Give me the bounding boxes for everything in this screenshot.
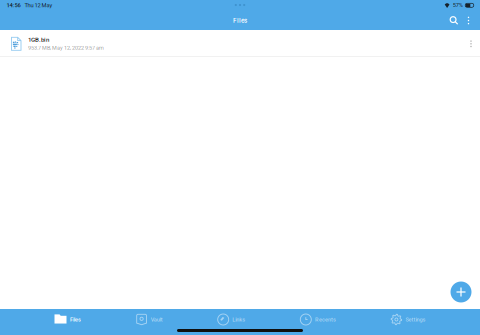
button[interactable]: File options [464, 30, 478, 56]
button[interactable]: Recents [300, 309, 336, 330]
staticText: Files [233, 17, 247, 24]
button[interactable]: 1GB.bin [0, 30, 480, 56]
staticText: 1GB.bin [28, 36, 49, 43]
button[interactable]: Links [218, 309, 245, 330]
button[interactable]: Settings [391, 309, 425, 330]
staticText: 953.7 MB, May 12, 2022 9:57 am [28, 45, 104, 51]
staticText: Links [232, 316, 245, 323]
staticText: Settings [405, 316, 425, 323]
staticText: Vault [151, 316, 163, 323]
button[interactable]: Vault [136, 309, 163, 330]
staticText: Files [70, 316, 81, 323]
staticText: Recents [315, 316, 336, 323]
button[interactable]: Add [447, 278, 475, 306]
button[interactable]: Search [446, 12, 462, 28]
staticText: 14:56 [6, 2, 20, 8]
staticText: 57% [453, 2, 463, 8]
button[interactable]: Files [54, 309, 81, 330]
button[interactable]: More options [462, 12, 475, 28]
staticText: Thu 12 May [24, 2, 52, 8]
